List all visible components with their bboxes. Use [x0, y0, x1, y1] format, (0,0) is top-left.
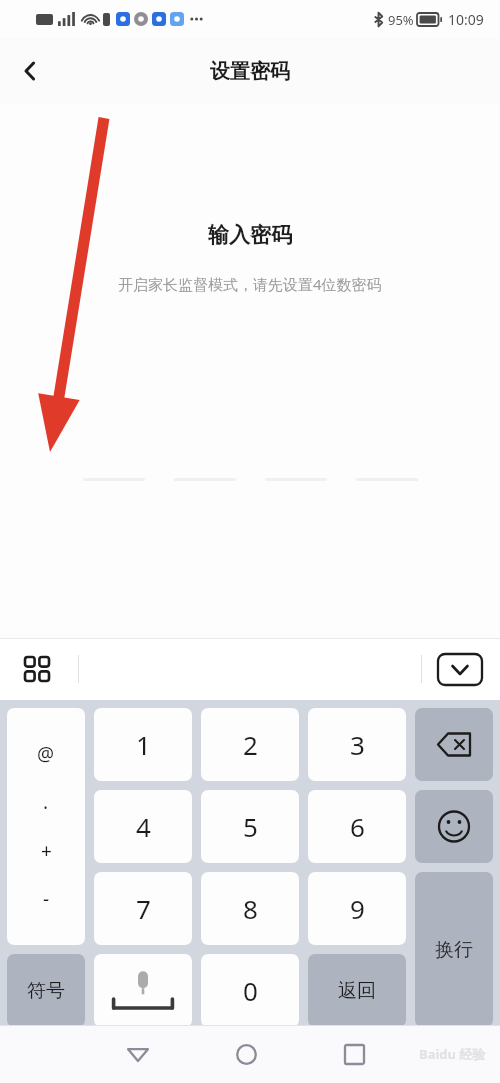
staticText: 2 — [243, 727, 258, 762]
staticText: + — [41, 838, 52, 864]
staticText: 6 — [350, 809, 365, 844]
staticText: 0 — [243, 973, 258, 1008]
button[interactable]: 符号 — [7, 954, 85, 1027]
button[interactable]: 2 — [201, 708, 299, 781]
button[interactable]: 6 — [308, 790, 406, 863]
button[interactable]: Back — [6, 47, 54, 95]
button[interactable]: 5 — [201, 790, 299, 863]
button[interactable] — [415, 790, 493, 863]
button[interactable]: 4 — [94, 790, 192, 863]
button[interactable]: Recents — [326, 1026, 382, 1082]
staticText: 4 — [136, 809, 151, 844]
button[interactable]: @ — [7, 708, 85, 945]
button[interactable]: 1 — [94, 708, 192, 781]
staticText: 8 — [243, 891, 258, 926]
staticText: 95% — [388, 11, 414, 29]
staticText: 换行 — [435, 938, 473, 962]
staticText: 9 — [350, 891, 365, 926]
button[interactable]: 8 — [201, 872, 299, 945]
button[interactable]: 7 — [94, 872, 192, 945]
button[interactable]: 9 — [308, 872, 406, 945]
button[interactable] — [94, 954, 192, 1027]
button[interactable]: 换行 — [415, 872, 493, 1027]
staticText: - — [43, 886, 50, 912]
staticText: Baidu 经验 — [419, 1045, 486, 1063]
staticText: 3 — [350, 727, 365, 762]
staticText: 设置密码 — [210, 59, 290, 84]
staticText: 1 — [136, 727, 151, 762]
staticText: 开启家长监督模式，请先设置4位数密码 — [118, 274, 382, 294]
staticText: 7 — [136, 891, 151, 926]
staticText: 符号 — [27, 979, 65, 1003]
button[interactable]: 返回 — [308, 954, 406, 1027]
button[interactable]: Hide keyboard — [438, 654, 482, 685]
button[interactable]: Home — [218, 1026, 274, 1082]
button[interactable]: 3 — [308, 708, 406, 781]
button[interactable]: Back — [110, 1026, 166, 1082]
staticText: @ — [37, 741, 55, 767]
button[interactable] — [415, 708, 493, 781]
staticText: 5 — [243, 809, 258, 844]
staticText: 输入密码 — [208, 222, 292, 248]
button[interactable]: 0 — [201, 954, 299, 1027]
staticText: 10:09 — [448, 10, 484, 29]
staticText: 返回 — [338, 979, 376, 1003]
button[interactable]: Keyboard layouts — [14, 646, 60, 692]
staticText: . — [43, 789, 49, 815]
